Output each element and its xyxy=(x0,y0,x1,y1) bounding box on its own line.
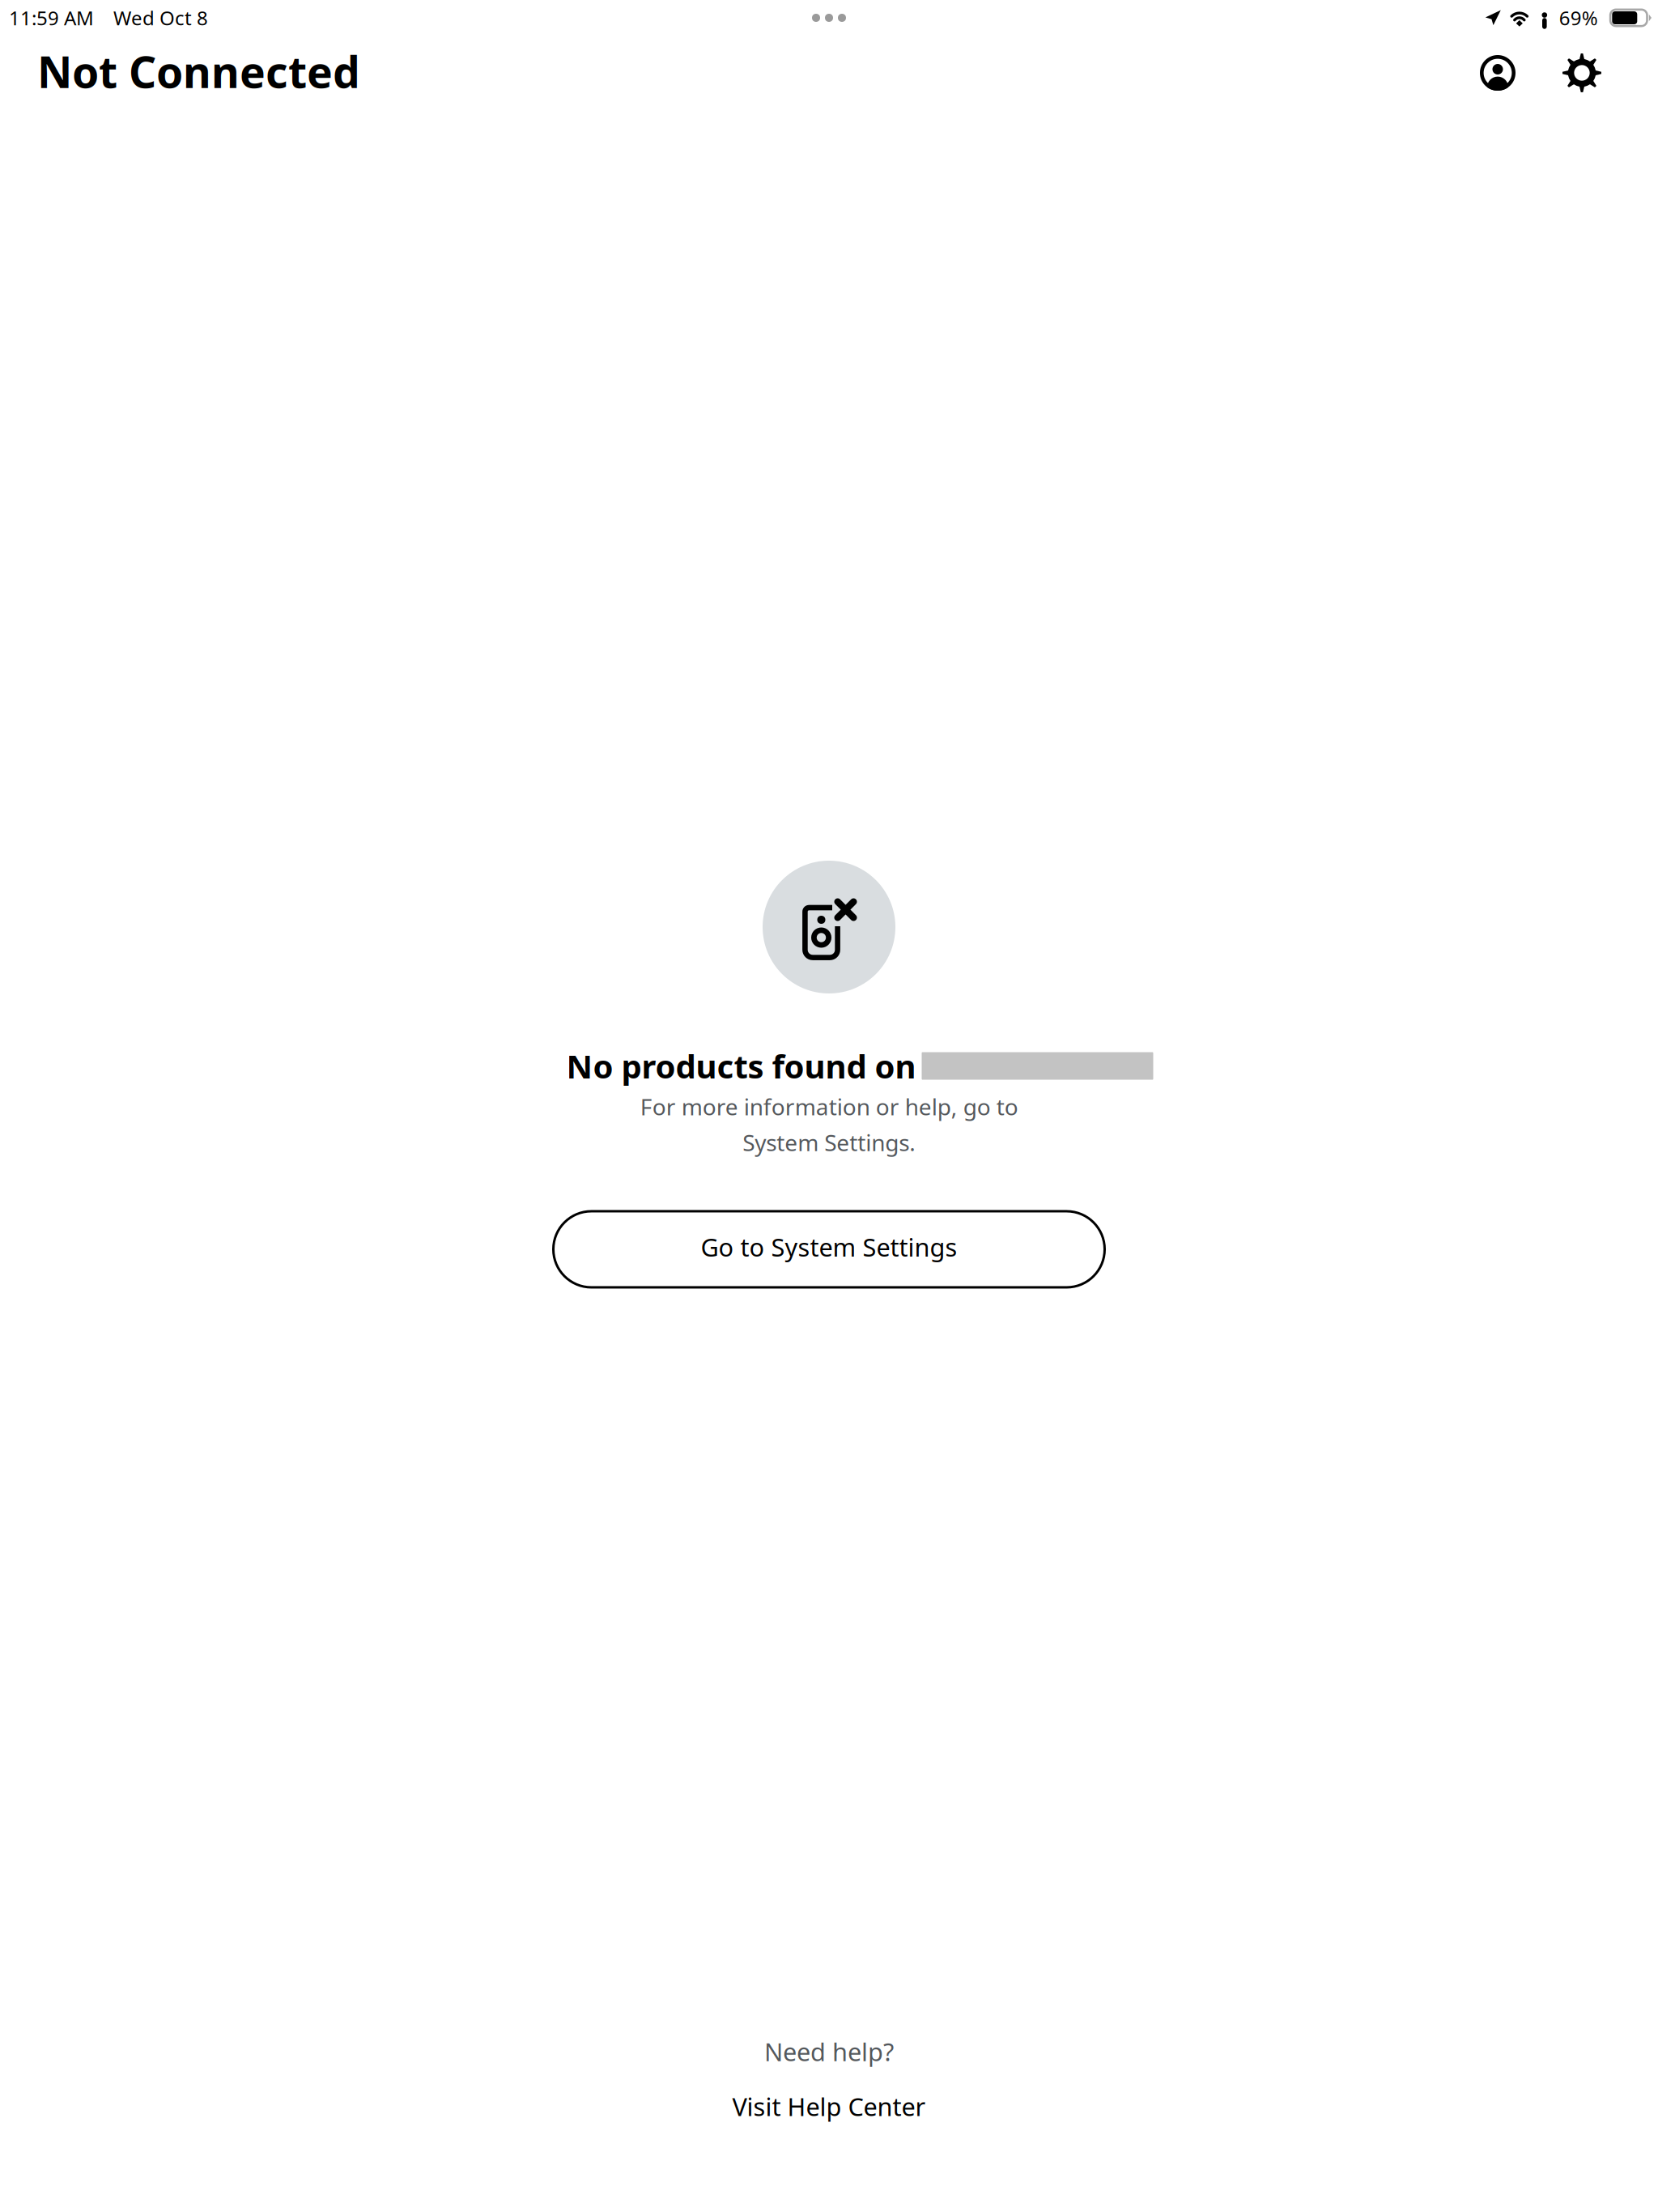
button[interactable]: Account xyxy=(1472,47,1524,99)
staticText: Go to System Settings xyxy=(701,1230,957,1263)
staticText: 11:59 AM xyxy=(9,5,94,31)
button[interactable]: Visit Help Center xyxy=(732,2090,926,2123)
staticText: For more information or help, go to Syst… xyxy=(640,1092,1018,1157)
staticText: No products found on xyxy=(566,1044,916,1087)
button[interactable]: Settings xyxy=(1556,47,1608,99)
staticText: Visit Help Center xyxy=(732,2090,926,2123)
staticText: 69% xyxy=(1559,5,1598,31)
staticText: Not Connected xyxy=(37,43,360,100)
staticText: Need help? xyxy=(764,2035,894,2068)
button[interactable]: Go to System Settings xyxy=(552,1210,1106,1289)
staticText: Wed Oct 8 xyxy=(113,5,208,31)
